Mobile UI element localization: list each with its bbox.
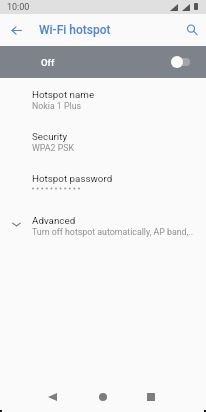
- staticText: Hotspot name: [32, 89, 95, 100]
- staticText: WPA2 PSK: [32, 143, 74, 153]
- button[interactable]: Home: [91, 385, 115, 409]
- button[interactable]: Recent apps: [139, 385, 163, 409]
- staticText: 10:00: [7, 2, 30, 13]
- staticText: Security: [32, 131, 68, 142]
- staticText: Wi-Fi hotspot: [39, 23, 111, 37]
- staticText: Nokia 1 Plus: [32, 101, 82, 111]
- staticText: Off: [41, 57, 55, 68]
- button[interactable]: Navigate up: [5, 19, 28, 42]
- button[interactable]: Off: [0, 46, 206, 78]
- button[interactable]: Back: [40, 385, 64, 409]
- button[interactable]: Advanced: [0, 209, 206, 251]
- button[interactable]: Hotspot password: [0, 167, 206, 209]
- staticText: Advanced: [32, 215, 76, 226]
- staticText: Hotspot password: [32, 173, 113, 184]
- staticText: Turn off hotspot automatically, AP band,…: [32, 227, 193, 237]
- button[interactable]: Security: [0, 125, 206, 167]
- button[interactable]: Search: [181, 19, 203, 41]
- button[interactable]: Hotspot name: [0, 83, 206, 125]
